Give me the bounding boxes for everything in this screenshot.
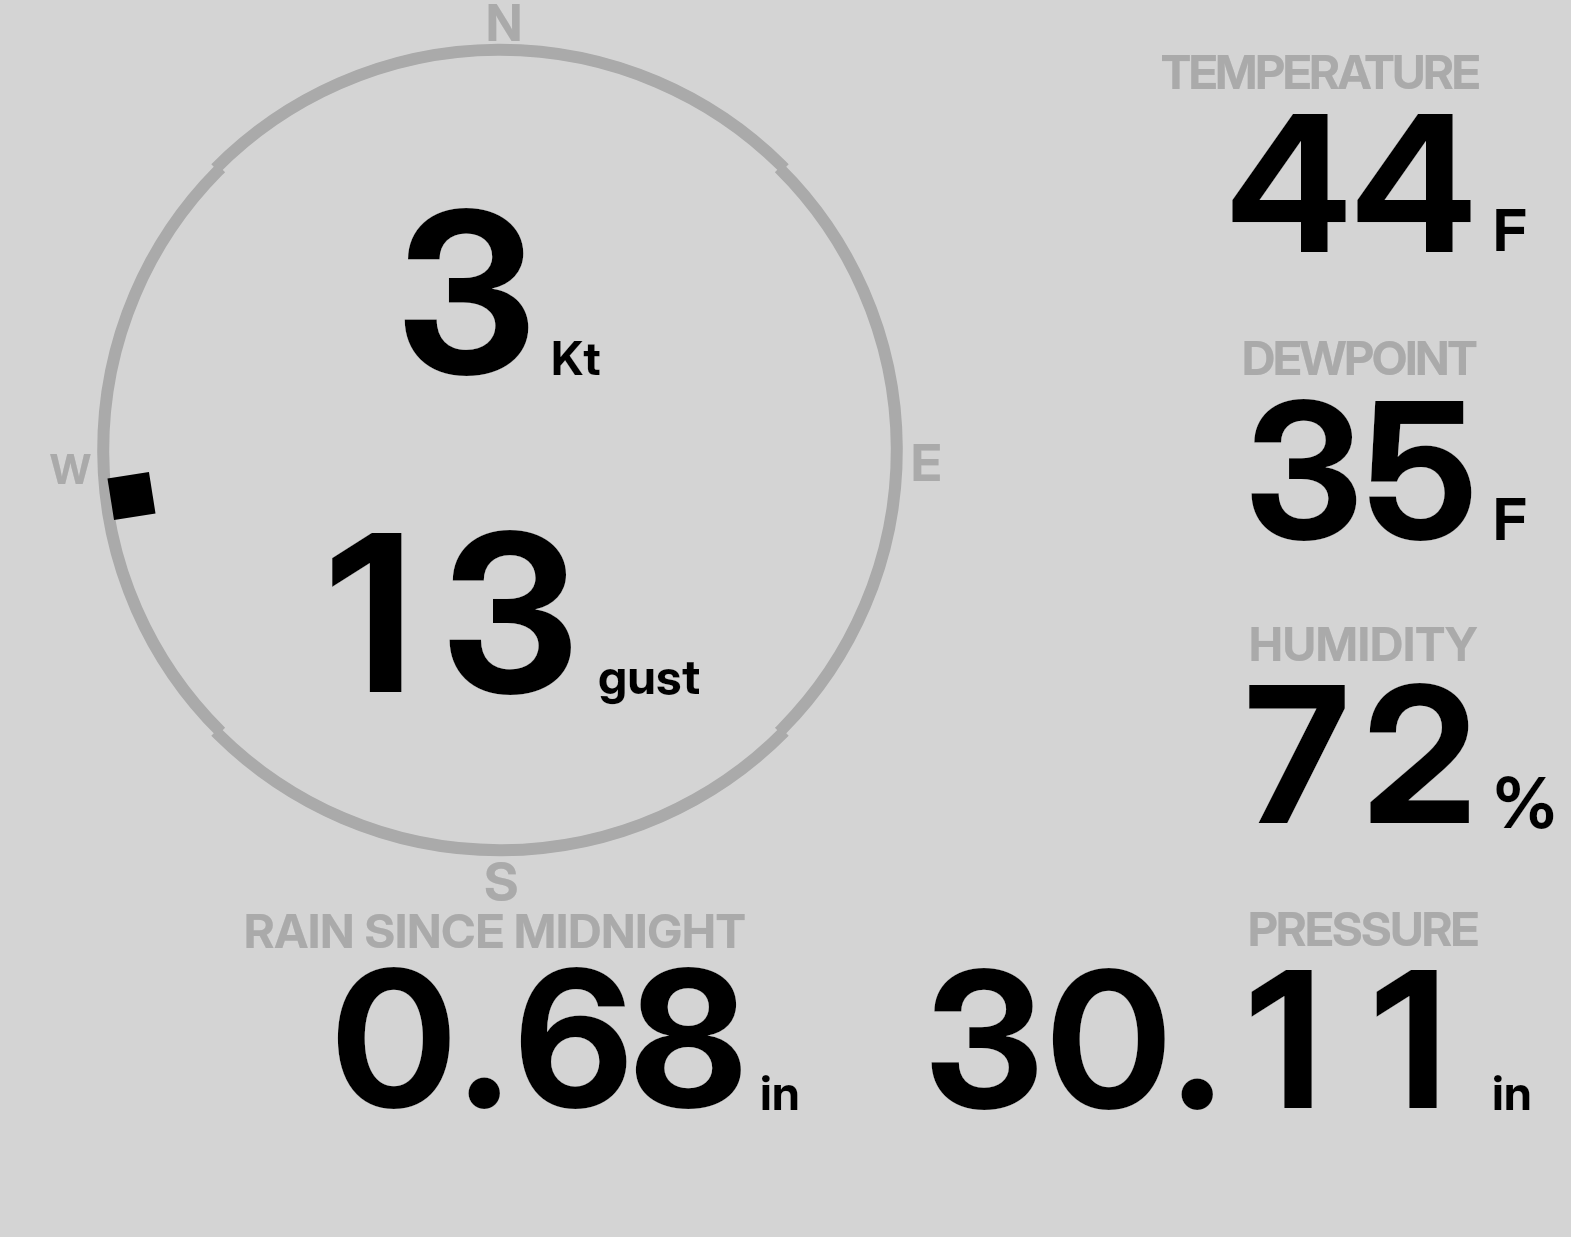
button[interactable]: Temperature 44 degrees F <box>1140 30 1570 290</box>
staticText: S <box>484 850 519 914</box>
staticText: F <box>1493 484 1527 554</box>
staticText: F <box>1493 195 1527 265</box>
staticText: 2 <box>1363 640 1477 869</box>
staticText: 5 <box>1364 356 1478 585</box>
staticText: 8 <box>630 923 747 1153</box>
staticText: PRESSURE <box>1248 900 1478 957</box>
staticText: RAIN SINCE MIDNIGHT <box>244 902 746 959</box>
staticText: W <box>50 444 91 494</box>
staticText: TEMPERATURE <box>1161 43 1479 100</box>
staticText: 1 <box>1373 924 1448 1154</box>
staticText: 0 <box>332 923 456 1153</box>
staticText: 3 <box>925 924 1043 1154</box>
staticText: 6 <box>515 923 633 1153</box>
staticText: gust <box>598 647 700 706</box>
staticText: HUMIDITY <box>1249 615 1478 672</box>
staticText: . <box>461 923 508 1153</box>
staticText: in <box>1492 1063 1532 1121</box>
staticText: % <box>1492 760 1558 845</box>
staticText: N <box>486 0 523 53</box>
other: Wind direction dial <box>0 0 1571 1237</box>
button[interactable]: Dew point 35 degrees F <box>1140 315 1570 575</box>
staticText: 1 <box>1248 924 1323 1154</box>
staticText: . <box>1174 924 1221 1154</box>
button[interactable]: Rain since midnight 0.68 inches <box>230 890 810 1130</box>
button[interactable]: Humidity 72 percent <box>1140 600 1570 860</box>
staticText: 1 <box>328 480 414 745</box>
staticText: DEWPOINT <box>1242 329 1476 386</box>
staticText: E <box>911 433 942 493</box>
staticText: in <box>760 1063 800 1121</box>
staticText: 4 <box>1227 69 1352 298</box>
staticText: 4 <box>1352 69 1477 298</box>
staticText: 7 <box>1245 640 1349 869</box>
staticText: Kt <box>551 329 601 386</box>
button[interactable]: Wind 3 knots gusting 13, from the west <box>60 40 940 870</box>
staticText: 0 <box>1047 924 1171 1154</box>
staticText: 3 <box>397 157 536 427</box>
button[interactable]: Pressure 30.11 inches <box>890 890 1550 1130</box>
staticText: 3 <box>442 480 578 745</box>
staticText: 3 <box>1245 356 1363 585</box>
